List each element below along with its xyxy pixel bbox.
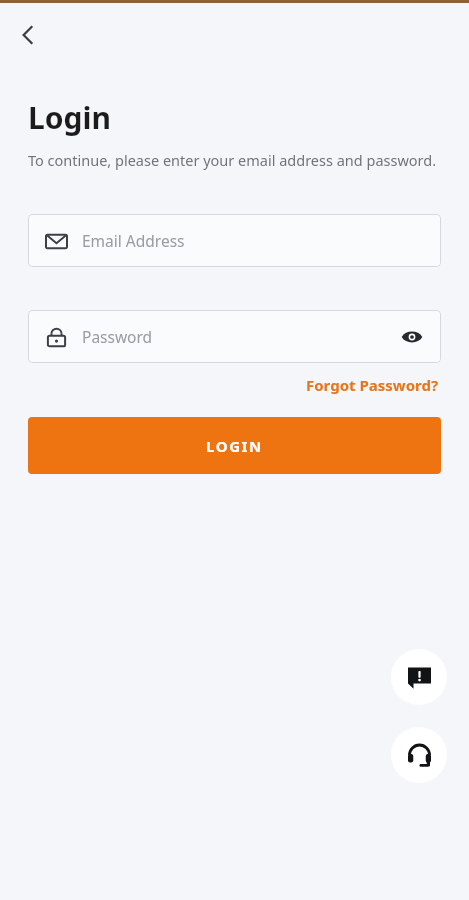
staticText: Email Address [82, 230, 185, 251]
staticText: To continue, please enter your email add… [28, 150, 441, 170]
staticText: Password [82, 326, 153, 347]
button[interactable]: Feedback [391, 649, 447, 705]
button[interactable]: LOGIN [28, 417, 441, 474]
button[interactable]: Support [391, 727, 447, 783]
staticText: Login [28, 97, 111, 138]
button[interactable]: Email Address [28, 214, 441, 267]
button[interactable]: Show password [399, 324, 425, 350]
button[interactable]: Forgot Password? [304, 373, 441, 397]
staticText: Forgot Password? [306, 375, 439, 395]
button[interactable]: Back [4, 11, 52, 59]
button[interactable]: Password [28, 310, 441, 363]
staticText: LOGIN [206, 436, 263, 456]
